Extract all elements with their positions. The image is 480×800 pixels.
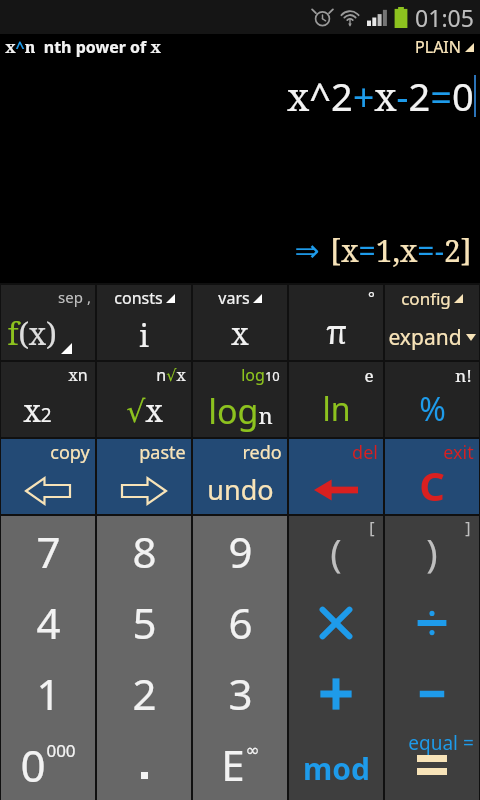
button[interactable] [289, 587, 383, 658]
staticText: ln [322, 387, 351, 431]
staticText: ∞ [245, 740, 260, 760]
staticText: ( [330, 526, 342, 578]
button[interactable]: consts [97, 285, 191, 360]
button[interactable]: 4 [1, 587, 95, 658]
staticText: f(x) [7, 313, 57, 354]
staticText: x^n nth power of x [5, 36, 161, 58]
staticText: xn [68, 364, 88, 386]
button[interactable]: sep , [1, 285, 95, 360]
staticText: 5 [132, 594, 157, 651]
staticText: copy [50, 440, 90, 465]
staticText: C [419, 458, 445, 512]
staticText: n√x [156, 364, 186, 386]
staticText: consts [114, 287, 163, 309]
staticText: 9 [228, 523, 253, 580]
button[interactable]: 0 [1, 729, 95, 800]
button[interactable]: 9 [193, 516, 287, 587]
staticText: exit [443, 440, 474, 465]
staticText: % [419, 387, 446, 431]
staticText: e [364, 364, 374, 387]
staticText: ⇒ [294, 233, 320, 268]
staticText: ] [465, 517, 471, 539]
button[interactable]: config [385, 285, 479, 360]
button[interactable]: del [289, 439, 383, 514]
button[interactable]: 8 [97, 516, 191, 587]
staticText: E [221, 736, 245, 793]
staticText: ) [426, 526, 438, 578]
button[interactable]: vars [193, 285, 287, 360]
staticText: paste [139, 440, 186, 465]
button[interactable]: exit [385, 439, 479, 514]
staticText: x [231, 313, 249, 354]
button[interactable]: log10 [193, 362, 287, 437]
button[interactable]: PLAIN [415, 36, 474, 58]
staticText: x^2+x-2=0 [287, 70, 474, 122]
button[interactable]: 2 [97, 658, 191, 729]
button[interactable]: n! [385, 362, 479, 437]
staticText: del [352, 440, 378, 465]
button[interactable]: n√x [97, 362, 191, 437]
staticText: 3 [228, 665, 253, 722]
button[interactable]: ° [289, 285, 383, 360]
staticText: vars [218, 287, 250, 309]
staticText: 4 [36, 594, 61, 651]
button[interactable] [385, 658, 479, 729]
staticText: undo [207, 471, 274, 508]
staticText: log10 [241, 364, 280, 386]
staticText: mod [303, 748, 370, 789]
staticText: 7 [36, 523, 61, 580]
button[interactable]: equal = [385, 729, 479, 800]
button[interactable]: ] [385, 516, 479, 587]
staticText: 1 [36, 665, 61, 722]
staticText: sep , [58, 287, 91, 307]
button[interactable] [97, 729, 191, 800]
staticText: config [401, 287, 451, 310]
button[interactable]: redo [193, 439, 287, 514]
staticText: 01:05 [415, 2, 474, 33]
button[interactable]: copy [1, 439, 95, 514]
button[interactable]: 7 [1, 516, 95, 587]
staticText: [x=1,x=-2] [330, 230, 472, 271]
staticText: 0 [20, 735, 46, 795]
button[interactable] [385, 587, 479, 658]
staticText: redo [242, 440, 282, 465]
staticText: √x [126, 390, 163, 431]
staticText: 000 [46, 739, 76, 762]
button[interactable]: e [289, 362, 383, 437]
staticText: 2 [132, 665, 157, 722]
staticText: 8 [132, 523, 157, 580]
staticText: 6 [228, 594, 253, 651]
staticText: ° [368, 287, 375, 309]
button[interactable]: E [193, 729, 287, 800]
button[interactable]: [ [289, 516, 383, 587]
staticText: x2 [23, 390, 52, 431]
staticText: logn [208, 388, 273, 434]
button[interactable]: 5 [97, 587, 191, 658]
button[interactable]: 1 [1, 658, 95, 729]
button[interactable]: 6 [193, 587, 287, 658]
staticText: i [139, 315, 149, 356]
staticText: π [326, 310, 347, 354]
button[interactable]: paste [97, 439, 191, 514]
button[interactable]: xn [1, 362, 95, 437]
button[interactable]: 3 [193, 658, 287, 729]
staticText: expand [388, 323, 462, 352]
staticText: PLAIN [415, 36, 461, 58]
button[interactable] [289, 658, 383, 729]
staticText: [ [369, 517, 375, 539]
staticText: equal = [408, 730, 474, 756]
button[interactable]: mod [289, 729, 383, 800]
staticText: n! [455, 364, 472, 387]
